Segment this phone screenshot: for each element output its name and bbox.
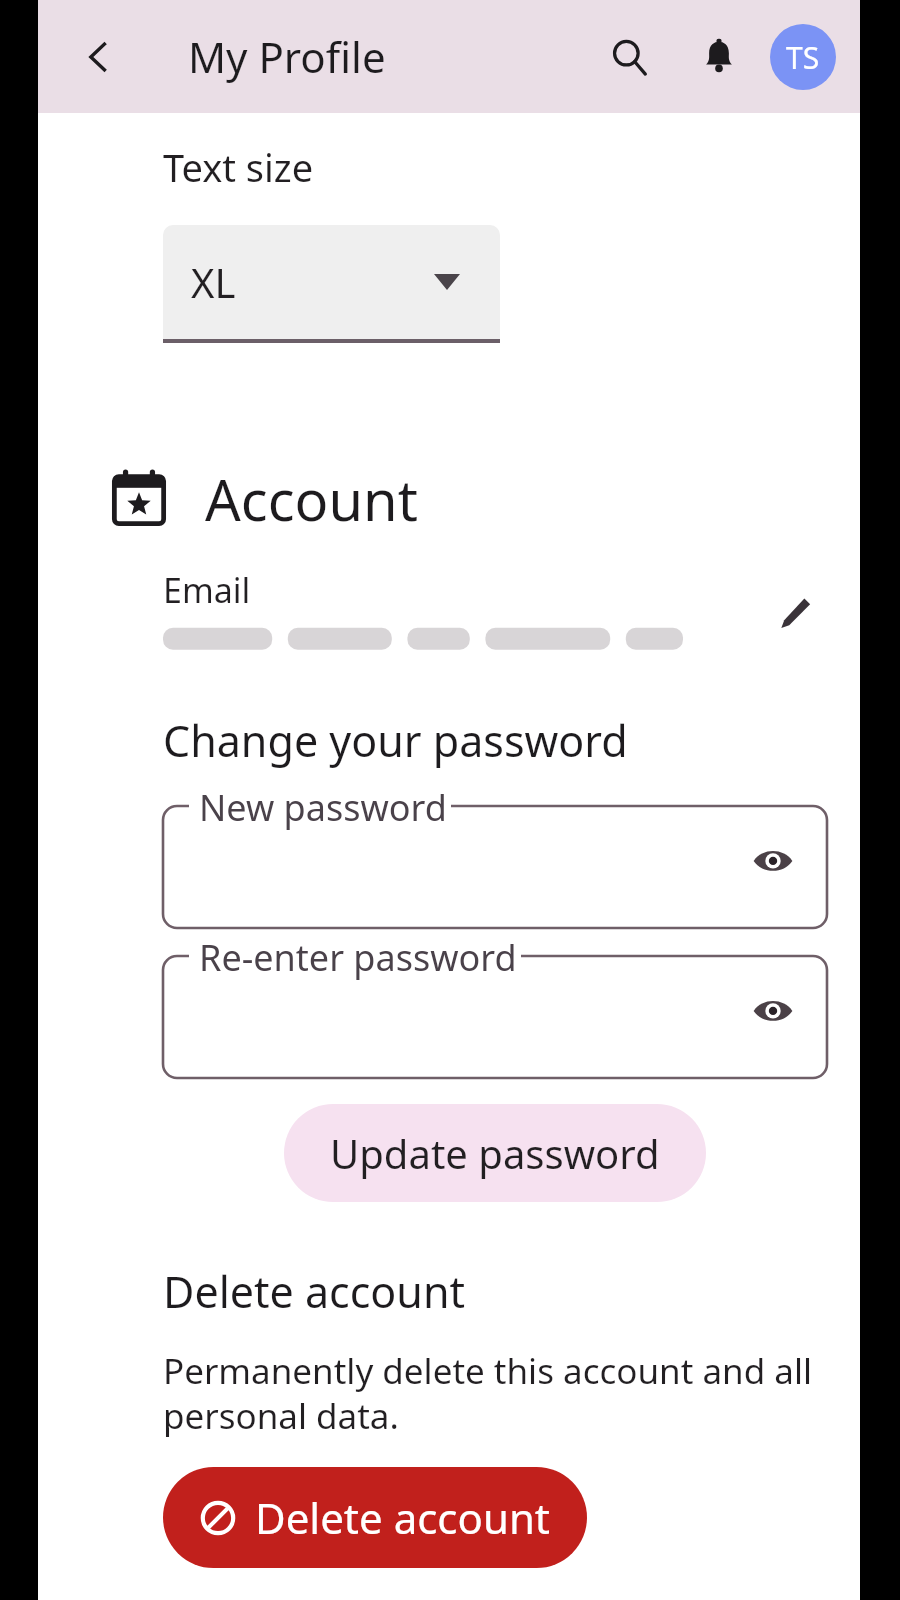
staticText: Re-enter password: [199, 933, 517, 982]
button[interactable]: Edit email: [763, 581, 827, 645]
staticText: Email: [163, 567, 251, 613]
button[interactable]: Notifications: [686, 24, 752, 90]
staticText: Delete account: [255, 1489, 551, 1546]
button[interactable]: Search: [596, 24, 662, 90]
button[interactable]: Account TS: [770, 24, 836, 90]
staticText: My Profile: [188, 28, 386, 85]
staticText: XL: [191, 255, 236, 309]
staticText: TS: [786, 37, 820, 78]
staticText: Update password: [330, 1126, 660, 1180]
button[interactable]: Back: [68, 26, 130, 88]
button[interactable]: New password: [163, 792, 827, 928]
staticText: Text size: [163, 141, 314, 193]
staticText: Change your password: [163, 711, 628, 770]
staticText: Permanently delete this account and all …: [163, 1347, 827, 1439]
staticText: Delete account: [163, 1262, 466, 1321]
button[interactable]: Delete account: [163, 1467, 587, 1568]
button[interactable]: Show password: [741, 978, 805, 1042]
button[interactable]: Show password: [741, 828, 805, 892]
button[interactable]: Update password: [284, 1104, 706, 1202]
button[interactable]: Re-enter password: [163, 942, 827, 1078]
staticText: Account: [205, 461, 418, 537]
staticText: New password: [199, 783, 447, 832]
button[interactable]: XL: [163, 225, 500, 343]
